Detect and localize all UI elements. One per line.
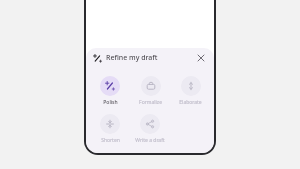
button[interactable]: Elaborate bbox=[177, 74, 204, 108]
staticText: Write a draft bbox=[135, 137, 165, 144]
staticText: Refine my draft bbox=[106, 53, 158, 63]
staticText: Shorten bbox=[101, 137, 120, 144]
staticText: Formalize bbox=[139, 99, 162, 106]
staticText: Polish bbox=[103, 99, 118, 106]
button[interactable]: Polish bbox=[98, 74, 122, 108]
button[interactable]: Shorten bbox=[98, 112, 122, 146]
button[interactable]: Write a draft bbox=[133, 112, 167, 146]
staticText: Elaborate bbox=[179, 99, 202, 106]
button[interactable]: Close bbox=[194, 51, 208, 65]
button[interactable]: Formalize bbox=[137, 74, 164, 108]
